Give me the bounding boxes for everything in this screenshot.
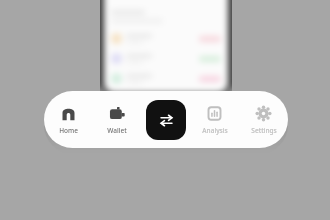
staticText: Home: [59, 126, 78, 135]
staticText: Wallet: [107, 126, 127, 135]
button[interactable]: Swap: [146, 100, 186, 140]
button[interactable]: Wallet: [92, 99, 141, 141]
button[interactable]: Home: [44, 99, 92, 141]
button[interactable]: Settings: [239, 99, 288, 141]
staticText: Settings: [251, 126, 277, 135]
button[interactable]: Analysis: [190, 99, 239, 141]
staticText: Analysis: [202, 126, 228, 135]
